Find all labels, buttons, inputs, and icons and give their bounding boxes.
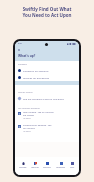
- staticText: 9:41: [18, 42, 23, 45]
- button[interactable]: Timesheets: [56, 157, 66, 168]
- button[interactable]: Approvals: [31, 157, 39, 168]
- staticText: Timesheets: [56, 166, 66, 168]
- staticText: Total Holding - Fee for Working: [23, 111, 54, 114]
- button[interactable]: Something for deadline - Fee: [15, 124, 79, 133]
- staticText: Swiftly Find Out What You Need to Act Up…: [22, 6, 72, 18]
- button[interactable]: More: [70, 157, 75, 168]
- staticText: ing Holiday: [23, 114, 35, 117]
- button[interactable]: Invoices for processing: [15, 75, 79, 80]
- button[interactable]: Payments for approval: [15, 68, 79, 73]
- staticText: Mine by Anyone: [18, 91, 33, 94]
- staticText: Payments for approval: [23, 69, 49, 72]
- staticText: The Authority Deadlines: [18, 107, 40, 110]
- staticText: 12.09.28: [23, 130, 31, 133]
- staticText: Overview: [19, 166, 27, 168]
- staticText: See the company's data in one place: [23, 97, 64, 100]
- button[interactable]: Payments: [43, 157, 51, 168]
- staticText: 12.09.28: [23, 117, 31, 120]
- button[interactable]: Total Holding - Fee for Working: [15, 111, 79, 120]
- staticText: Approvals: [31, 166, 39, 168]
- staticText: More: [70, 166, 75, 168]
- staticText: Payments: [43, 166, 51, 168]
- staticText: Invoices for processing: [23, 76, 49, 79]
- button[interactable]: Overview: [19, 157, 27, 168]
- button[interactable]: See the company's data in one place: [15, 96, 79, 101]
- staticText: What's up?: [18, 54, 36, 58]
- staticText: for Working: [23, 127, 35, 130]
- staticText: Something for deadline - Fee: [23, 124, 52, 127]
- staticText: Payments: [18, 63, 27, 66]
- other: Approvals: [34, 162, 37, 165]
- other: Overview: [22, 162, 25, 165]
